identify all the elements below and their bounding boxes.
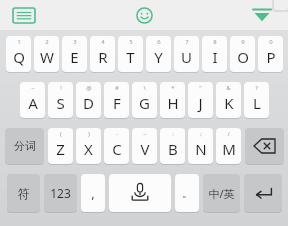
button[interactable]: 。 (175, 174, 199, 212)
staticText: P (266, 47, 276, 67)
button[interactable]: 中/英 (203, 174, 240, 212)
staticText: T (126, 47, 135, 67)
button[interactable]: @ (76, 82, 101, 118)
staticText: O (237, 47, 249, 67)
button[interactable]: : (160, 128, 185, 164)
staticText: 123 (50, 185, 71, 201)
staticText: ) (88, 130, 90, 138)
staticText: M (222, 139, 236, 159)
button[interactable]: 符 (7, 174, 40, 212)
button[interactable]: 8 (202, 36, 227, 72)
staticText: 4 (101, 38, 105, 46)
button[interactable]: 4 (90, 36, 115, 72)
staticText: B (168, 139, 178, 159)
staticText: - (116, 130, 118, 138)
staticText: G (139, 93, 150, 113)
button[interactable]: * (160, 82, 185, 118)
staticText: : (172, 130, 174, 138)
staticText: R (98, 47, 108, 67)
staticText: # (115, 84, 119, 92)
button[interactable]: ? (244, 82, 269, 118)
staticText: J (198, 93, 203, 113)
staticText: ~ (31, 84, 35, 92)
button[interactable]: ) (76, 128, 101, 164)
staticText: @ (86, 84, 92, 92)
button[interactable]: # (104, 82, 129, 118)
button[interactable]: Hide keyboard (249, 4, 275, 26)
staticText: 符 (18, 186, 30, 201)
button[interactable]: ; (188, 128, 213, 164)
staticText: I (212, 47, 218, 67)
staticText: 中/英 (208, 186, 235, 201)
staticText: 5 (129, 38, 133, 46)
button[interactable]: ~ (132, 128, 157, 164)
staticText: 3 (73, 38, 77, 46)
button[interactable]: Emoji (131, 2, 157, 28)
staticText: H (167, 93, 179, 113)
staticText: 1 (17, 38, 21, 46)
staticText: N (195, 139, 207, 159)
button[interactable]: " (188, 82, 213, 118)
staticText: 分词 (14, 139, 36, 153)
staticText: U (181, 47, 192, 67)
staticText: 2 (45, 38, 49, 46)
button[interactable]: 分词 (5, 128, 44, 164)
button[interactable]: 6 (146, 36, 171, 72)
button[interactable]: Space, voice input (109, 174, 171, 212)
button[interactable]: , (81, 174, 105, 212)
staticText: 6 (157, 38, 161, 46)
staticText: 8 (213, 38, 217, 46)
staticText: ; (200, 130, 202, 138)
staticText: * (171, 84, 175, 92)
button[interactable]: / (216, 128, 241, 164)
button[interactable]: & (216, 82, 241, 118)
staticText: / (227, 130, 230, 138)
staticText: 7 (185, 38, 189, 46)
button[interactable]: 123 (44, 174, 77, 212)
button[interactable]: ( (48, 128, 73, 164)
button[interactable]: Backspace (245, 128, 284, 164)
staticText: & (226, 84, 231, 92)
staticText: 0 (269, 38, 273, 46)
button[interactable]: \ (132, 82, 157, 118)
staticText: Z (56, 139, 65, 159)
button[interactable]: 0 (258, 36, 283, 72)
staticText: ! (60, 84, 62, 92)
staticText: S (56, 93, 65, 113)
staticText: D (83, 93, 94, 113)
button[interactable]: Keyboard layout (10, 4, 38, 26)
button[interactable]: 2 (34, 36, 59, 72)
staticText: 。 (182, 186, 193, 200)
button[interactable]: 1 (6, 36, 31, 72)
button[interactable]: 7 (174, 36, 199, 72)
staticText: F (113, 93, 121, 113)
staticText: X (84, 139, 93, 159)
staticText: W (40, 47, 54, 67)
staticText: A (28, 93, 38, 113)
staticText: E (70, 47, 79, 67)
staticText: K (224, 93, 234, 113)
button[interactable]: ! (48, 82, 73, 118)
staticText: ~ (143, 130, 147, 138)
button[interactable]: ~ (20, 82, 45, 118)
staticText: " (199, 84, 202, 92)
staticText: 9 (241, 38, 245, 46)
staticText: , (91, 184, 95, 202)
staticText: ? (255, 84, 258, 92)
button[interactable]: 5 (118, 36, 143, 72)
staticText: Q (13, 47, 25, 67)
staticText: \ (143, 84, 146, 92)
button[interactable]: 3 (62, 36, 87, 72)
staticText: C (112, 139, 122, 159)
staticText: L (253, 93, 261, 113)
staticText: ( (60, 130, 62, 138)
button[interactable]: Enter (244, 174, 282, 212)
button[interactable]: 9 (230, 36, 255, 72)
staticText: V (140, 139, 150, 159)
button[interactable]: - (104, 128, 129, 164)
staticText: Y (154, 47, 163, 67)
